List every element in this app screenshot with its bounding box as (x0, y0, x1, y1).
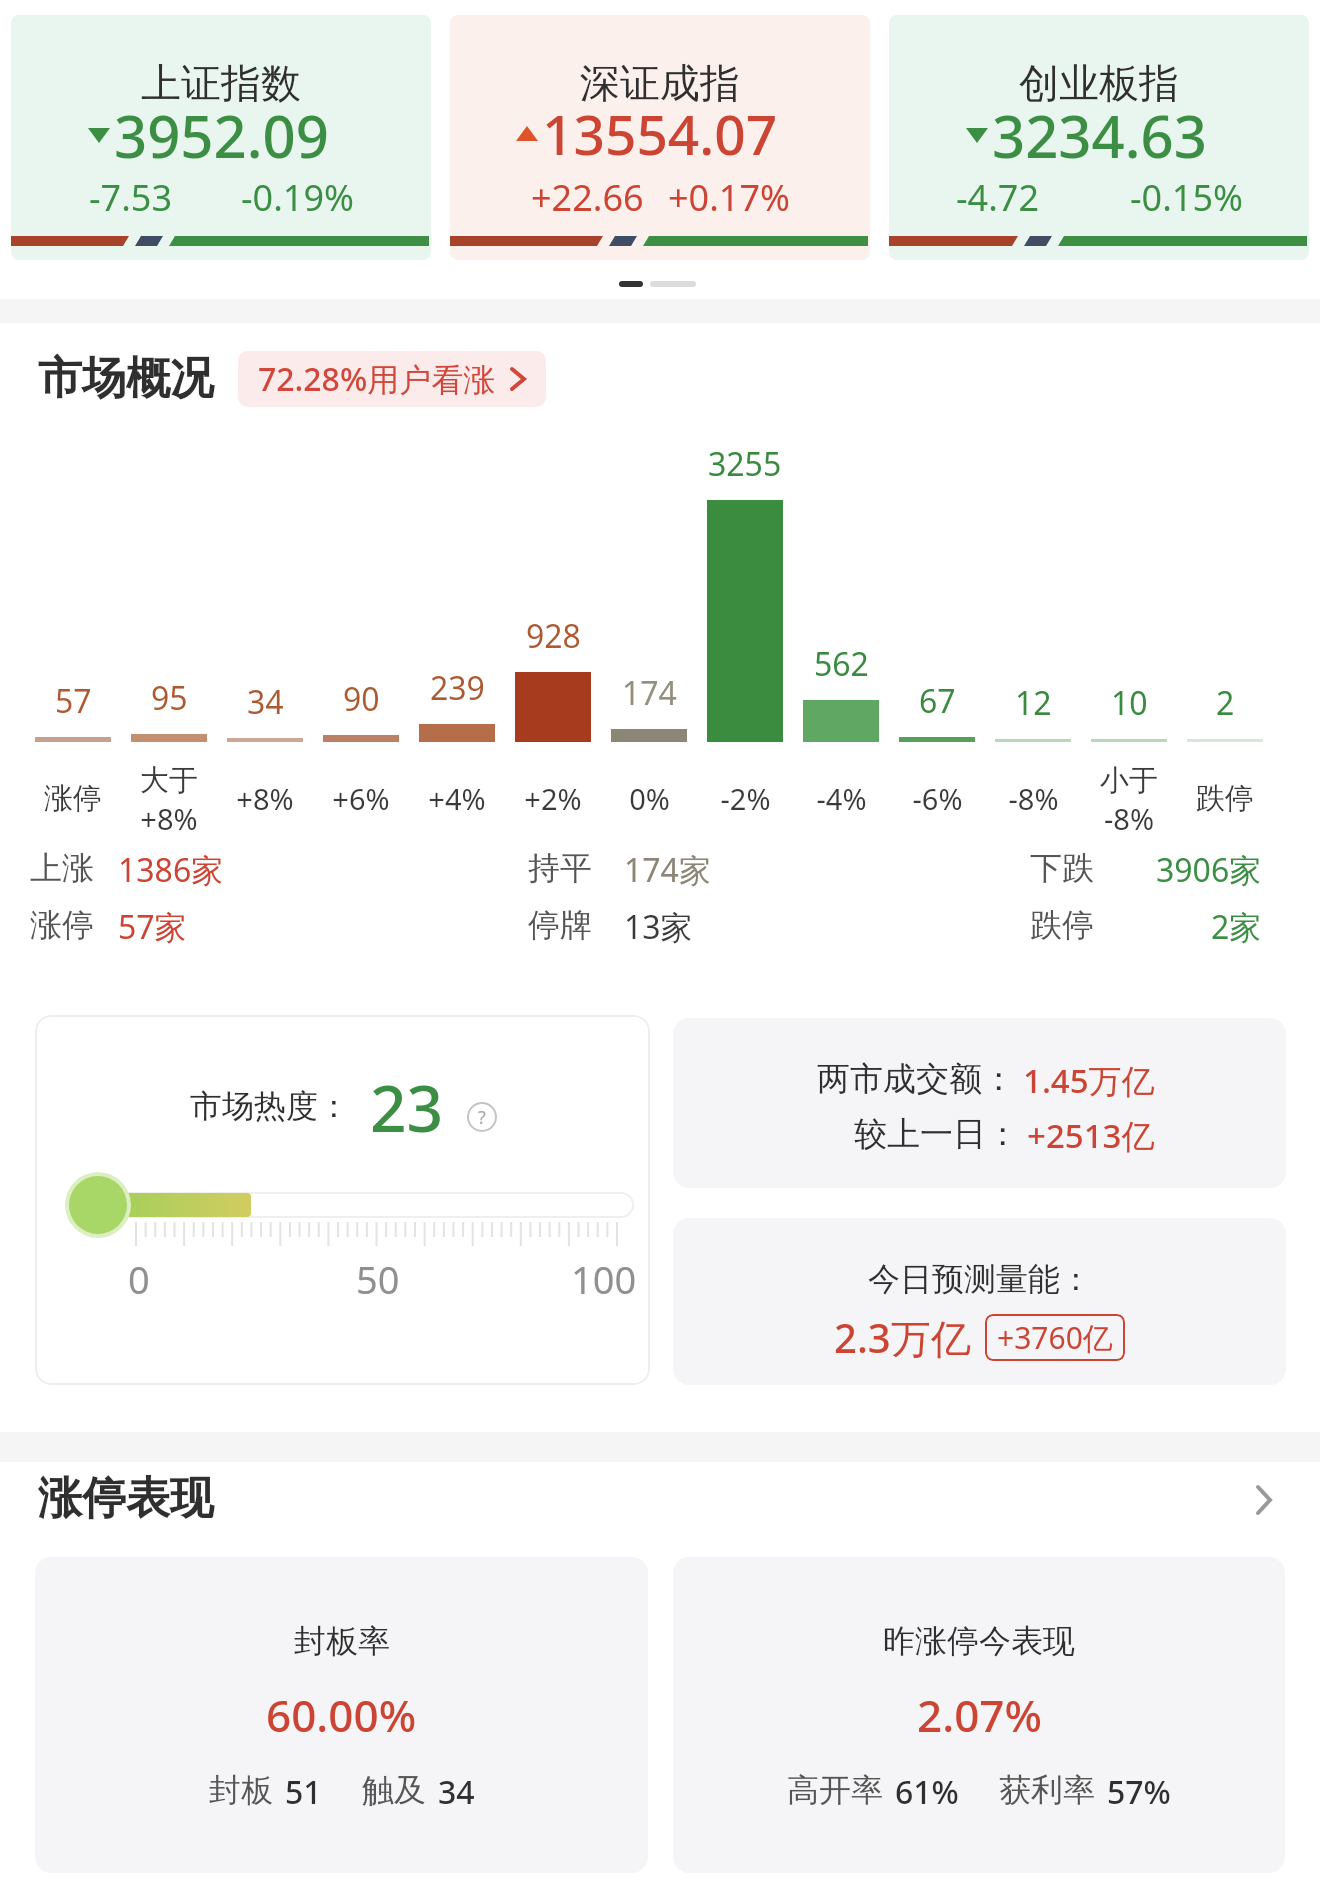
staticText: +3760亿 (997, 1317, 1113, 1358)
staticText: 174家 (624, 848, 711, 892)
staticText: 3906家 (1156, 848, 1262, 892)
staticText: 72.28%用户看涨 (258, 357, 496, 401)
staticText: +8% (236, 779, 294, 818)
staticText: 51 (285, 1770, 322, 1814)
staticText: 12 (1015, 681, 1052, 725)
staticText: -4% (816, 779, 867, 818)
staticText: -8% (1008, 779, 1059, 818)
staticText: +0.17% (668, 173, 790, 222)
staticText: 2 (1216, 681, 1235, 725)
staticText: 60.00% (266, 1685, 417, 1745)
staticText: 2.3万亿 (834, 1310, 971, 1365)
button[interactable]: 两市成交额： (673, 1018, 1286, 1188)
staticText: 深证成指 (580, 58, 740, 108)
button[interactable]: 昨涨停今表现 (673, 1557, 1285, 1873)
staticText: 174 (622, 671, 677, 715)
button[interactable]: 市场热度： (35, 1015, 650, 1385)
staticText: 95 (151, 676, 188, 720)
staticText: -4.72 (956, 173, 1040, 222)
staticText: 34 (438, 1770, 475, 1814)
staticText: 较上一日： (854, 1113, 1019, 1155)
staticText: 3234.63 (992, 96, 1207, 175)
staticText: 23 (370, 1064, 444, 1151)
staticText: 0 (128, 1253, 150, 1305)
staticText: -0.19% (241, 173, 354, 222)
staticText: 封板率 (294, 1621, 390, 1661)
staticText: 3255 (708, 442, 782, 486)
staticText: 57% (1107, 1770, 1171, 1814)
staticText: 1386家 (118, 848, 224, 892)
button[interactable]: 上证指数 (11, 15, 431, 260)
staticText: 57 (55, 679, 92, 723)
staticText: 封板 (209, 1770, 273, 1810)
staticText: -6% (912, 779, 963, 818)
button[interactable]: 今日预测量能： (673, 1218, 1286, 1385)
staticText: 今日预测量能： (868, 1259, 1092, 1299)
staticText: 67 (919, 679, 956, 723)
staticText: -7.53 (89, 173, 173, 222)
staticText: 13554.07 (542, 96, 778, 171)
staticText: 小于 -8% (1100, 762, 1158, 834)
staticText: 3952.09 (114, 96, 329, 175)
staticText: 涨停表现 (38, 1471, 214, 1526)
button[interactable]: 封板率 (35, 1557, 648, 1873)
staticText: 1.45万亿 (1023, 1058, 1155, 1103)
staticText: 10 (1111, 681, 1148, 725)
staticText: +2% (524, 779, 582, 818)
staticText: 涨停 (44, 780, 102, 817)
staticText: +2513亿 (1027, 1113, 1155, 1158)
staticText: 跌停 (1030, 905, 1094, 945)
staticText: 13家 (624, 905, 693, 949)
staticText: 562 (814, 642, 869, 686)
button[interactable]: 72.28%用户看涨 (258, 351, 526, 407)
staticText: 大于 +8% (140, 762, 198, 834)
staticText: 2家 (1211, 905, 1262, 949)
staticText: 两市成交额： (817, 1058, 1015, 1100)
staticText: ? (478, 1105, 486, 1130)
staticText: 90 (343, 677, 380, 721)
staticText: 创业板指 (1019, 58, 1179, 108)
staticText: +4% (428, 779, 486, 818)
staticText: 持平 (528, 848, 592, 888)
staticText: 50 (356, 1253, 400, 1305)
staticText: 昨涨停今表现 (883, 1621, 1075, 1661)
staticText: 57家 (118, 905, 187, 949)
staticText: 100 (571, 1253, 637, 1305)
staticText: 928 (526, 614, 581, 658)
button[interactable]: 深证成指 (450, 15, 870, 260)
staticText: 61% (895, 1770, 959, 1814)
staticText: 市场热度： (190, 1086, 350, 1126)
staticText: 跌停 (1196, 780, 1254, 817)
button[interactable]: 创业板指 (889, 15, 1309, 260)
staticText: -2% (720, 779, 771, 818)
staticText: 239 (430, 666, 485, 710)
staticText: +22.66 (531, 173, 644, 222)
staticText: 涨停 (30, 905, 94, 945)
staticText: 下跌 (1030, 848, 1094, 888)
staticText: 触及 (362, 1770, 426, 1810)
staticText: 上涨 (30, 848, 94, 888)
staticText: 34 (247, 680, 284, 724)
staticText: -0.15% (1130, 173, 1243, 222)
staticText: 上证指数 (141, 58, 301, 108)
staticText: 2.07% (917, 1685, 1042, 1745)
staticText: 高开率 (787, 1770, 883, 1810)
staticText: 市场概况 (38, 351, 214, 406)
staticText: 停牌 (528, 905, 592, 945)
staticText: +6% (332, 779, 390, 818)
staticText: 获利率 (999, 1770, 1095, 1810)
staticText: 0% (629, 779, 670, 818)
button[interactable] (1256, 1485, 1272, 1515)
